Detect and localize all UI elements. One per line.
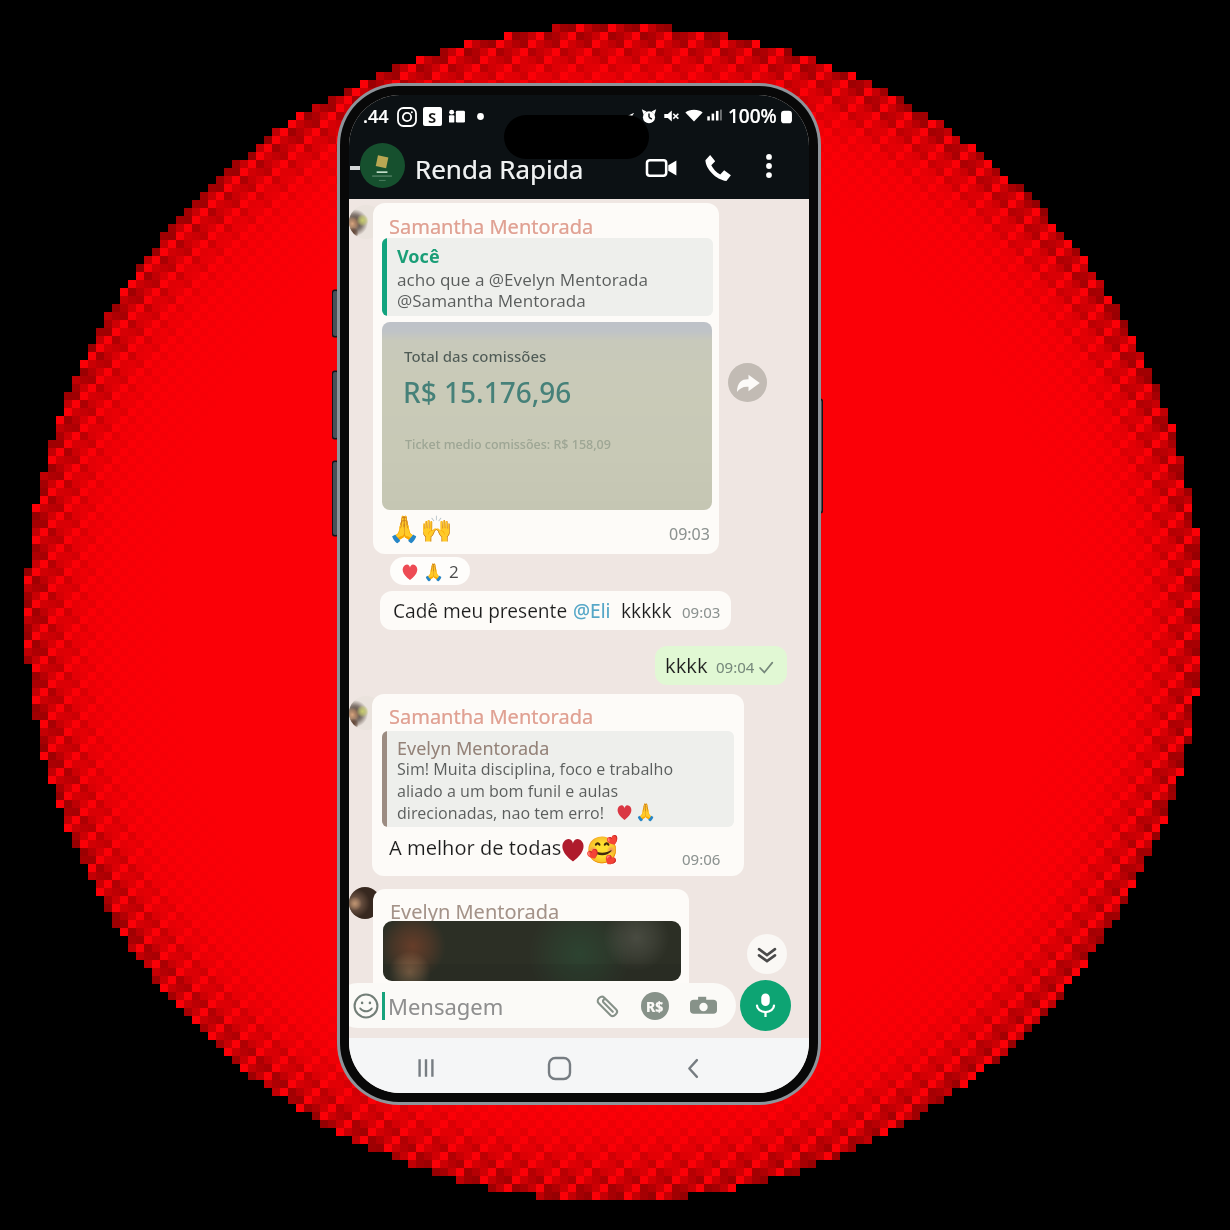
button[interactable]: Camera	[688, 991, 718, 1021]
staticText: 100%	[728, 103, 777, 129]
button[interactable]: Attach file	[592, 991, 622, 1021]
staticText: Evelyn Mentorada	[390, 898, 560, 925]
staticText: 🙏	[635, 802, 657, 822]
staticText: S	[428, 107, 437, 126]
staticText: 🙏	[423, 562, 445, 582]
staticText: R$	[646, 997, 664, 1016]
staticText: Você	[397, 244, 440, 269]
staticText: Cadê meu presente	[393, 598, 573, 624]
button[interactable]: Forward message	[728, 363, 767, 402]
button[interactable]: kkkk	[655, 646, 787, 685]
button[interactable]: More options	[749, 146, 789, 186]
staticText: 2	[449, 560, 459, 583]
staticText: Samantha Mentorada	[389, 703, 594, 730]
staticText: Mensagem	[388, 991, 504, 1021]
staticText: acho que a @Evelyn Mentorada @Samantha M…	[397, 268, 648, 312]
button[interactable]: Recent apps	[404, 1046, 448, 1090]
staticText: 09:03	[669, 523, 710, 545]
staticText: kkkkk	[611, 598, 672, 624]
staticText: R$ 15.176,96	[403, 373, 572, 411]
button[interactable]: Video call	[640, 146, 684, 190]
staticText: 09:06	[682, 849, 721, 869]
staticText: Ticket medio comissões: R$ 158,09	[405, 436, 611, 453]
staticText: 09:04	[716, 657, 755, 677]
staticText: Sim! Muita disciplina, foco e trabalho a…	[397, 758, 674, 824]
staticText: 🥰	[586, 835, 619, 865]
button[interactable]: Group photo	[360, 143, 405, 188]
staticText: 🙏🙌	[388, 514, 453, 544]
button[interactable]: Voice call	[696, 146, 740, 190]
staticText: @Eli	[573, 598, 611, 624]
button[interactable]: Evelyn Mentorada	[373, 889, 689, 999]
staticText: A melhor de todas	[389, 834, 562, 861]
staticText: Evelyn Mentorada	[397, 736, 550, 761]
staticText: .44	[363, 104, 389, 129]
staticText: Total das comissões	[404, 346, 547, 366]
staticText: 09:03	[682, 602, 721, 622]
button[interactable]: Scroll to bottom	[747, 934, 787, 974]
staticText: Samantha Mentorada	[389, 213, 594, 240]
button[interactable]: 🙏	[390, 557, 470, 585]
button[interactable]: Record voice message	[740, 980, 791, 1031]
button[interactable]: Mensagem	[349, 983, 736, 1028]
button[interactable]: Samantha Mentorada	[372, 694, 744, 876]
button[interactable]: Cadê meu presente	[380, 591, 731, 630]
button[interactable]: Renda Rapida	[415, 151, 584, 186]
staticText: kkkk	[665, 652, 708, 679]
button[interactable]: Send payment	[641, 992, 669, 1020]
button[interactable]: Back	[671, 1046, 715, 1090]
button[interactable]: Samantha Mentorada	[373, 203, 719, 554]
button[interactable]: Home	[537, 1046, 581, 1090]
